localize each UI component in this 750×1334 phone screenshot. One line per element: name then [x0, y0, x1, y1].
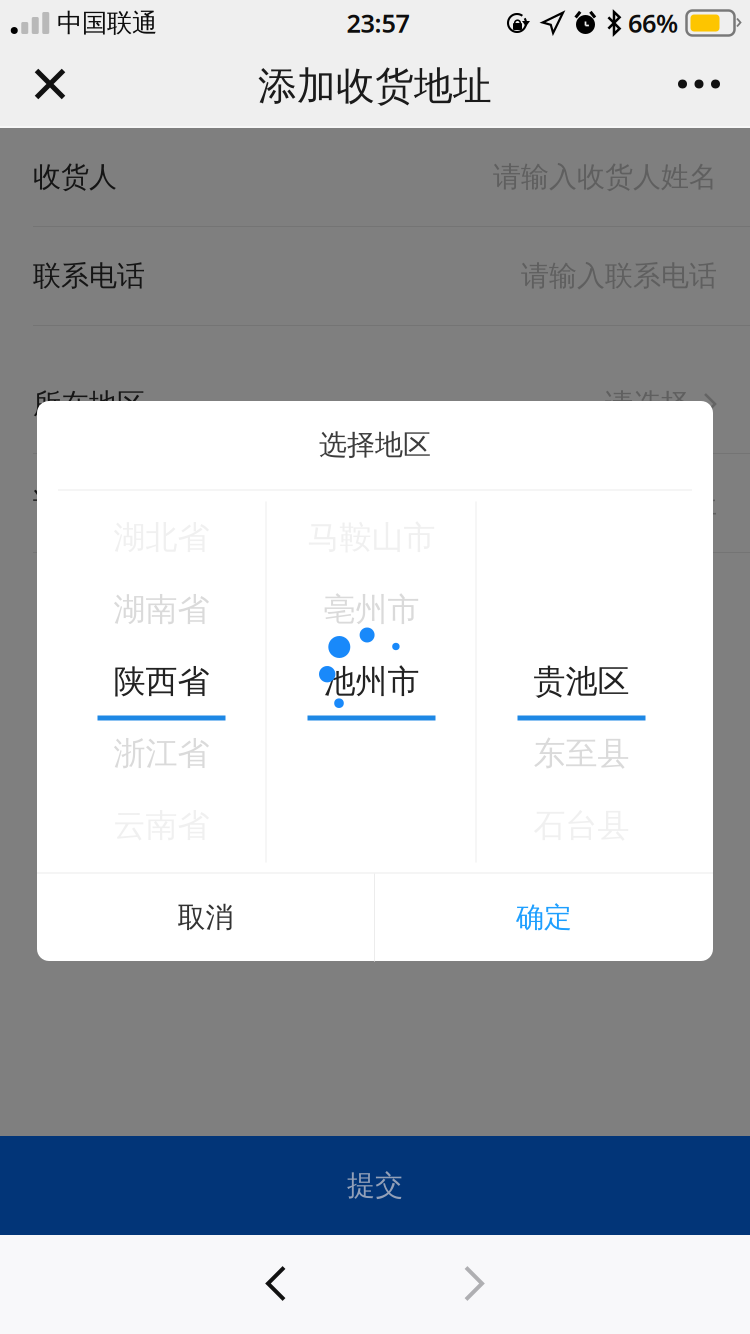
- staticText: 湖南省: [113, 590, 209, 629]
- button[interactable]: More options: [640, 46, 720, 128]
- staticText: 石台县: [533, 806, 629, 845]
- staticText: 浙江省: [113, 734, 209, 773]
- staticText: 亳州市: [323, 590, 419, 629]
- button[interactable]: Forward: [424, 1235, 524, 1334]
- staticText: 所在地区: [33, 387, 145, 421]
- staticText: 确定: [516, 900, 572, 935]
- button[interactable]: 取消: [37, 873, 374, 961]
- button[interactable]: 提交: [0, 1136, 750, 1235]
- button[interactable]: Back: [226, 1235, 326, 1334]
- staticText: 陕西省: [113, 662, 209, 701]
- staticText: 池州市: [323, 662, 419, 701]
- staticText: 马鞍山市: [307, 518, 435, 557]
- staticText: 请输入收货人姓名: [493, 160, 717, 194]
- button[interactable]: Close: [34, 46, 114, 128]
- staticText: 中国联通: [57, 7, 157, 38]
- staticText: 取消: [177, 900, 233, 935]
- staticText: 东至县: [533, 734, 629, 773]
- staticText: 收货人: [33, 160, 117, 194]
- button[interactable]: 确定: [375, 873, 713, 961]
- staticText: 请选择: [605, 387, 689, 421]
- staticText: 提交: [347, 1168, 403, 1203]
- staticText: 请输入联系电话: [521, 259, 717, 293]
- staticText: 选择地区: [319, 428, 431, 462]
- staticText: 湖北省: [113, 518, 209, 557]
- staticText: 云南省: [113, 806, 209, 845]
- staticText: 联系电话: [33, 259, 145, 293]
- staticText: 66%: [628, 6, 678, 40]
- staticText: 请输入详细地址: [521, 486, 717, 520]
- staticText: 详细地址: [33, 486, 145, 520]
- staticText: 贵池区: [533, 662, 629, 701]
- staticText: 23:57: [346, 6, 409, 40]
- staticText: 添加收货地址: [258, 62, 492, 110]
